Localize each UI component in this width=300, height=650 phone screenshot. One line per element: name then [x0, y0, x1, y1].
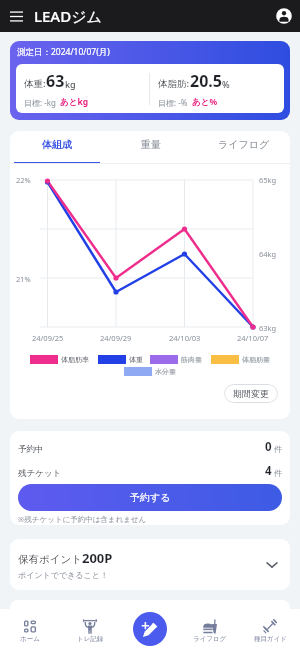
staticText: 重量 — [141, 138, 161, 151]
button[interactable]: ホーム — [0, 617, 60, 643]
staticText: 21% — [16, 274, 31, 284]
button[interactable]: ライフログ — [197, 131, 290, 164]
button[interactable]: New record — [133, 612, 167, 646]
staticText: 0 — [265, 439, 272, 455]
button[interactable]: 重量 — [104, 131, 197, 164]
staticText: 24/10/03 — [169, 333, 201, 343]
staticText: 体脂肪: — [158, 77, 190, 90]
staticText: 測定日：2024/10/07(月) — [17, 46, 110, 58]
staticText: 22% — [16, 175, 31, 185]
staticText: 残チケット — [18, 468, 62, 479]
staticText: 24/10/07 — [237, 333, 269, 343]
staticText: 24/09/29 — [100, 333, 132, 343]
staticText: 体組成 — [42, 138, 72, 151]
staticText: 目標: -kg — [24, 97, 56, 108]
staticText: 目標: -% — [158, 97, 188, 108]
staticText: 20.5 — [190, 70, 222, 92]
staticText: 24/09/25 — [32, 333, 64, 343]
staticText: 件 — [274, 468, 282, 478]
staticText: ライフログ — [218, 138, 270, 151]
staticText: ※残チケットに予約中は含まれません — [18, 514, 147, 524]
staticText: 体脂肪率 — [61, 355, 89, 364]
button[interactable]: Menu — [4, 4, 28, 28]
staticText: 4 — [265, 463, 272, 479]
staticText: 予約中 — [18, 444, 44, 455]
staticText: あと% — [192, 96, 218, 108]
staticText: kg — [65, 78, 76, 90]
staticText: ポイントでできること！ — [18, 570, 108, 580]
button[interactable]: 種目ガイド — [240, 617, 300, 643]
button[interactable]: Account — [273, 5, 295, 27]
staticText: 64kg — [259, 249, 277, 259]
staticText: ホーム — [20, 635, 40, 643]
staticText: 水分量 — [155, 367, 176, 376]
staticText: 件 — [274, 444, 282, 454]
staticText: 体重 — [129, 355, 143, 364]
staticText: トレ記録 — [77, 635, 104, 643]
button[interactable]: 体組成 — [10, 131, 104, 164]
staticText: 期間変更 — [233, 388, 269, 399]
staticText: 予約する — [130, 491, 171, 504]
staticText: 保有ポイント — [18, 553, 82, 566]
staticText: 63kg — [259, 323, 277, 333]
staticText: 200P — [82, 549, 113, 567]
staticText: 63 — [46, 70, 65, 92]
button[interactable]: トレ記録 — [60, 617, 120, 643]
staticText: 65kg — [259, 175, 277, 185]
staticText: 種目ガイド — [254, 635, 287, 643]
staticText: あとkg — [60, 96, 89, 108]
staticText: 体脂肪量 — [242, 355, 270, 364]
staticText: ライフログ — [193, 635, 227, 643]
button[interactable]: 期間変更 — [224, 384, 278, 403]
staticText: 体重: — [24, 77, 46, 90]
staticText: LEADジム — [34, 6, 102, 26]
button[interactable]: ライフログ — [180, 617, 240, 643]
staticText: 筋肉量 — [181, 355, 202, 364]
button[interactable]: 保有ポイント — [10, 539, 290, 590]
button[interactable]: 予約する — [18, 484, 282, 511]
staticText: % — [222, 78, 230, 90]
